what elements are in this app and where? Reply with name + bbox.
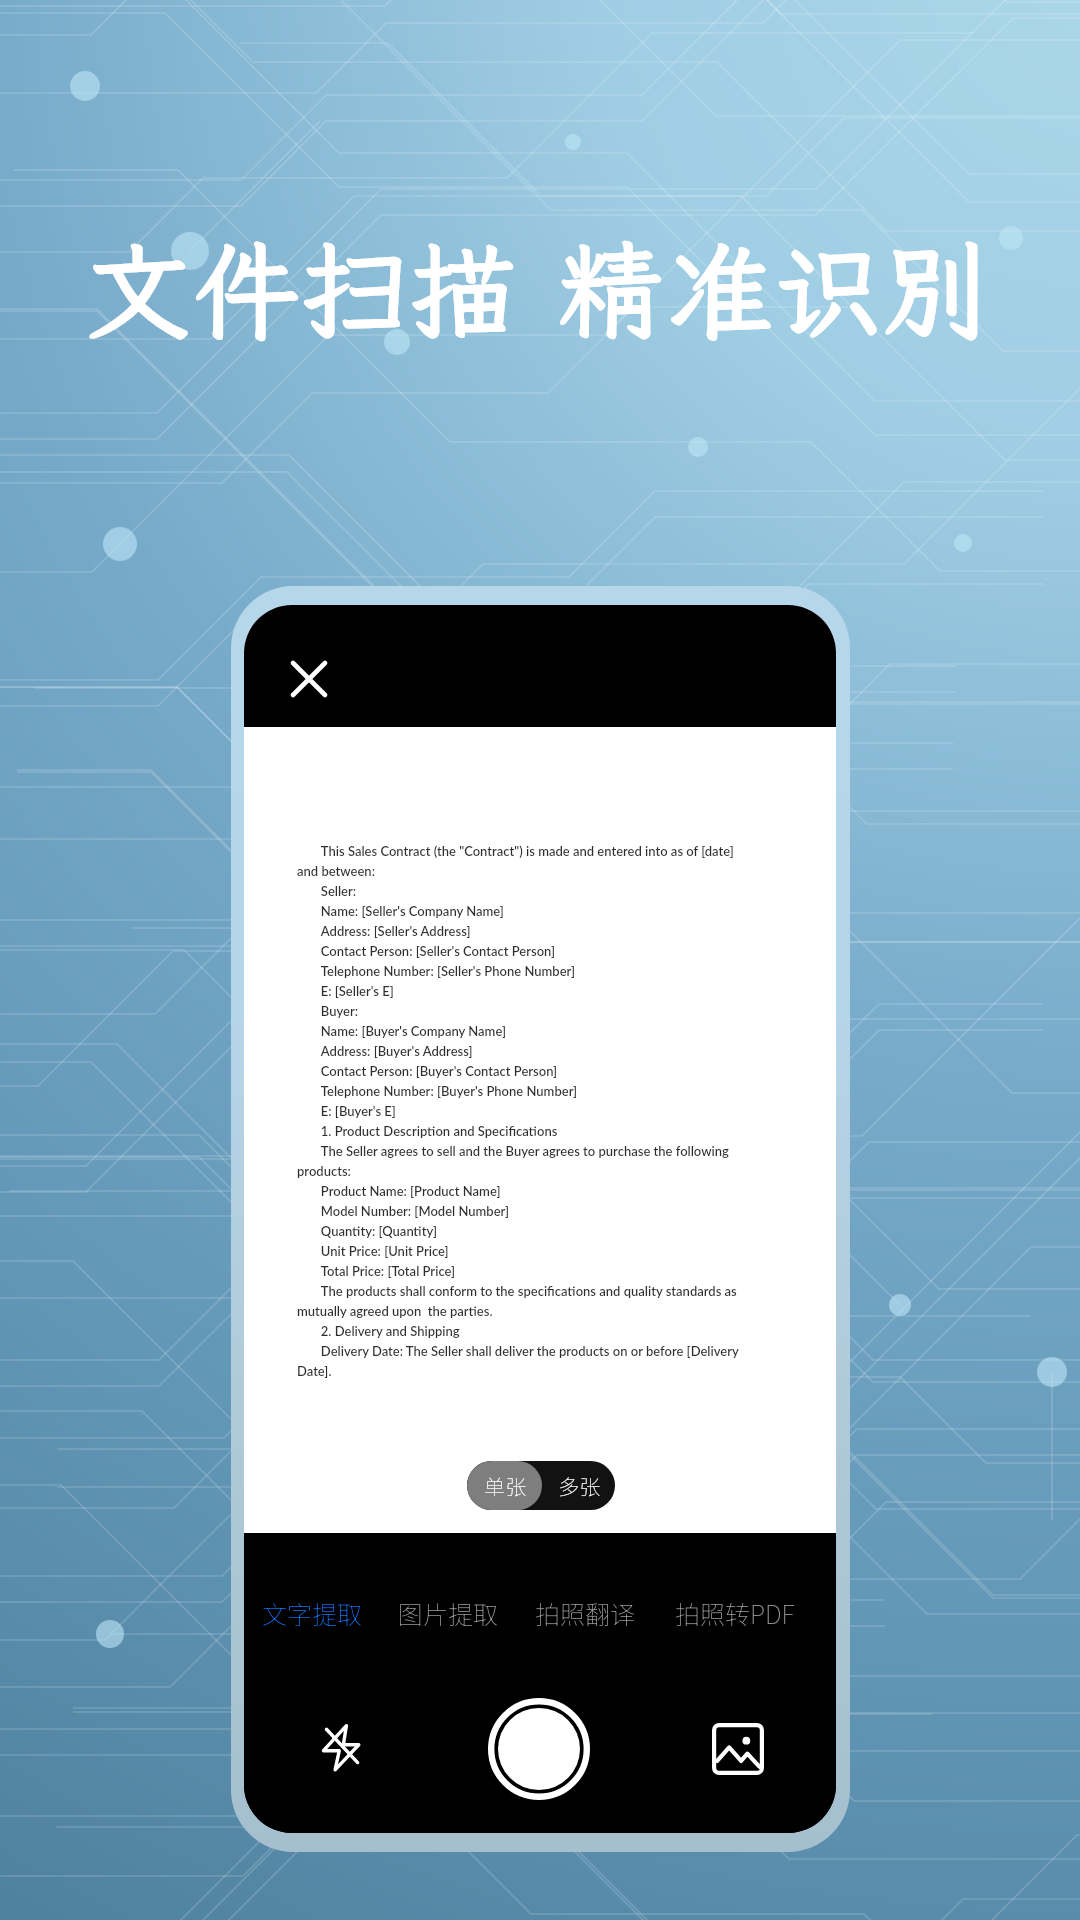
button[interactable]: 拍照翻译: [535, 1591, 636, 1635]
staticText: 文字提取: [262, 1595, 363, 1631]
staticText: This Sales Contract (the "Contract") is …: [297, 839, 739, 1379]
button[interactable]: 文字提取: [262, 1591, 363, 1635]
button[interactable]: Take photo: [488, 1698, 590, 1800]
staticText: 文件扫描 精准识别: [85, 220, 992, 360]
staticText: 拍照翻译: [535, 1595, 636, 1631]
staticText: 多张: [558, 1471, 600, 1501]
button[interactable]: 图片提取: [398, 1591, 499, 1635]
button[interactable]: Gallery: [708, 1719, 768, 1779]
button[interactable]: Close: [285, 655, 333, 703]
button[interactable]: 多张: [542, 1461, 615, 1510]
button[interactable]: Flash off: [311, 1717, 371, 1777]
staticText: 单张: [484, 1471, 526, 1501]
staticText: 图片提取: [398, 1595, 499, 1631]
staticText: 拍照转PDF: [675, 1595, 795, 1631]
button[interactable]: 拍照转PDF: [675, 1591, 795, 1635]
staticText: 文件扫描 精准识别: [85, 220, 992, 360]
button[interactable]: 单张: [467, 1461, 542, 1510]
